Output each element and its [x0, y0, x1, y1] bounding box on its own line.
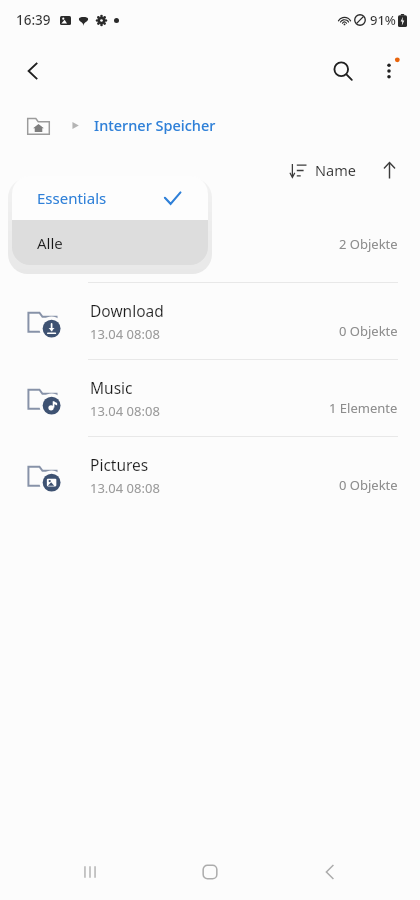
staticText: 13.04 08:08 — [90, 402, 160, 420]
button[interactable]: Interner Speicher — [92, 111, 218, 139]
staticText: 91% — [370, 11, 396, 29]
button[interactable]: Search — [320, 48, 366, 94]
staticText: Pictures — [90, 454, 149, 475]
button[interactable]: Name — [286, 154, 360, 186]
staticText: Interner Speicher — [94, 115, 216, 135]
button[interactable]: Download — [0, 283, 420, 359]
button[interactable]: Home — [180, 844, 240, 900]
button[interactable]: Music — [0, 360, 420, 436]
button[interactable]: Sort ascending — [372, 153, 406, 187]
button[interactable]: Alle — [12, 220, 208, 265]
staticText: Download — [90, 300, 164, 321]
staticText: 2 Objekte — [339, 235, 398, 253]
button[interactable]: More options — [366, 48, 412, 94]
button[interactable]: Home — [22, 109, 54, 141]
staticText: Essentials — [37, 188, 107, 208]
staticText: 13.04 08:08 — [90, 479, 160, 497]
button[interactable]: Back — [10, 48, 56, 94]
button[interactable]: Recents — [60, 844, 120, 900]
button[interactable]: Back — [300, 844, 360, 900]
button[interactable]: Essentials — [12, 176, 208, 220]
staticText: 13.04 08:08 — [90, 325, 160, 343]
staticText: 0 Objekte — [339, 322, 398, 340]
button[interactable]: 2 Objekte — [0, 206, 420, 282]
staticText: Name — [315, 160, 356, 180]
staticText: 0 Objekte — [339, 476, 398, 494]
staticText: 16:39 — [16, 11, 51, 29]
staticText: Music — [90, 377, 133, 398]
button[interactable]: Pictures — [0, 437, 420, 513]
staticText: 1 Elemente — [329, 399, 398, 417]
staticText: Alle — [37, 233, 63, 253]
